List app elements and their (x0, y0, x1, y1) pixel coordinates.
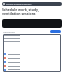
button[interactable] (4, 56, 60, 60)
button[interactable]: Private browsing session (2, 2, 62, 6)
button[interactable] (4, 68, 60, 71)
button[interactable] (4, 52, 60, 56)
staticText: Private browsing session (6, 3, 32, 6)
button[interactable] (50, 30, 61, 33)
button[interactable] (4, 64, 60, 68)
staticText: Upcoming (3, 30, 15, 33)
button[interactable] (4, 60, 60, 64)
staticText: Schedule work, study, ventilation sessio… (2, 7, 39, 16)
